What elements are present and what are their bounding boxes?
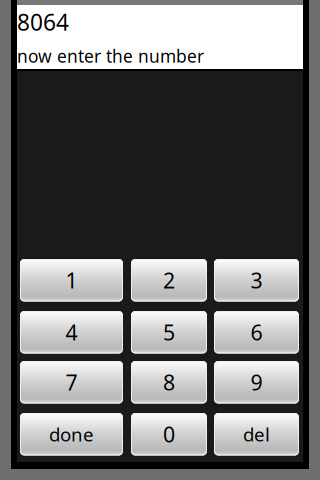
button[interactable]: 0: [131, 413, 207, 455]
staticText: done: [49, 421, 94, 447]
button[interactable]: 4: [20, 311, 123, 353]
button[interactable]: 6: [214, 311, 299, 353]
staticText: 3: [250, 266, 262, 295]
button[interactable]: 8: [131, 361, 207, 403]
staticText: 4: [65, 318, 77, 347]
button[interactable]: 5: [131, 311, 207, 353]
staticText: 2: [163, 266, 175, 295]
staticText: 9: [250, 368, 262, 397]
staticText: del: [243, 421, 270, 447]
staticText: 7: [65, 368, 77, 397]
staticText: 5: [163, 318, 175, 347]
staticText: 8064: [17, 7, 69, 37]
button[interactable]: 9: [214, 361, 299, 403]
staticText: 8: [163, 368, 175, 397]
staticText: 0: [163, 420, 175, 449]
staticText: 6: [250, 318, 262, 347]
button[interactable]: del: [214, 413, 299, 455]
button[interactable]: 7: [20, 361, 123, 403]
staticText: now enter the number: [17, 44, 204, 68]
button[interactable]: 2: [131, 259, 207, 301]
button[interactable]: done: [20, 413, 123, 455]
button[interactable]: 3: [214, 259, 299, 301]
staticText: 1: [65, 266, 77, 295]
button[interactable]: 1: [20, 259, 123, 301]
